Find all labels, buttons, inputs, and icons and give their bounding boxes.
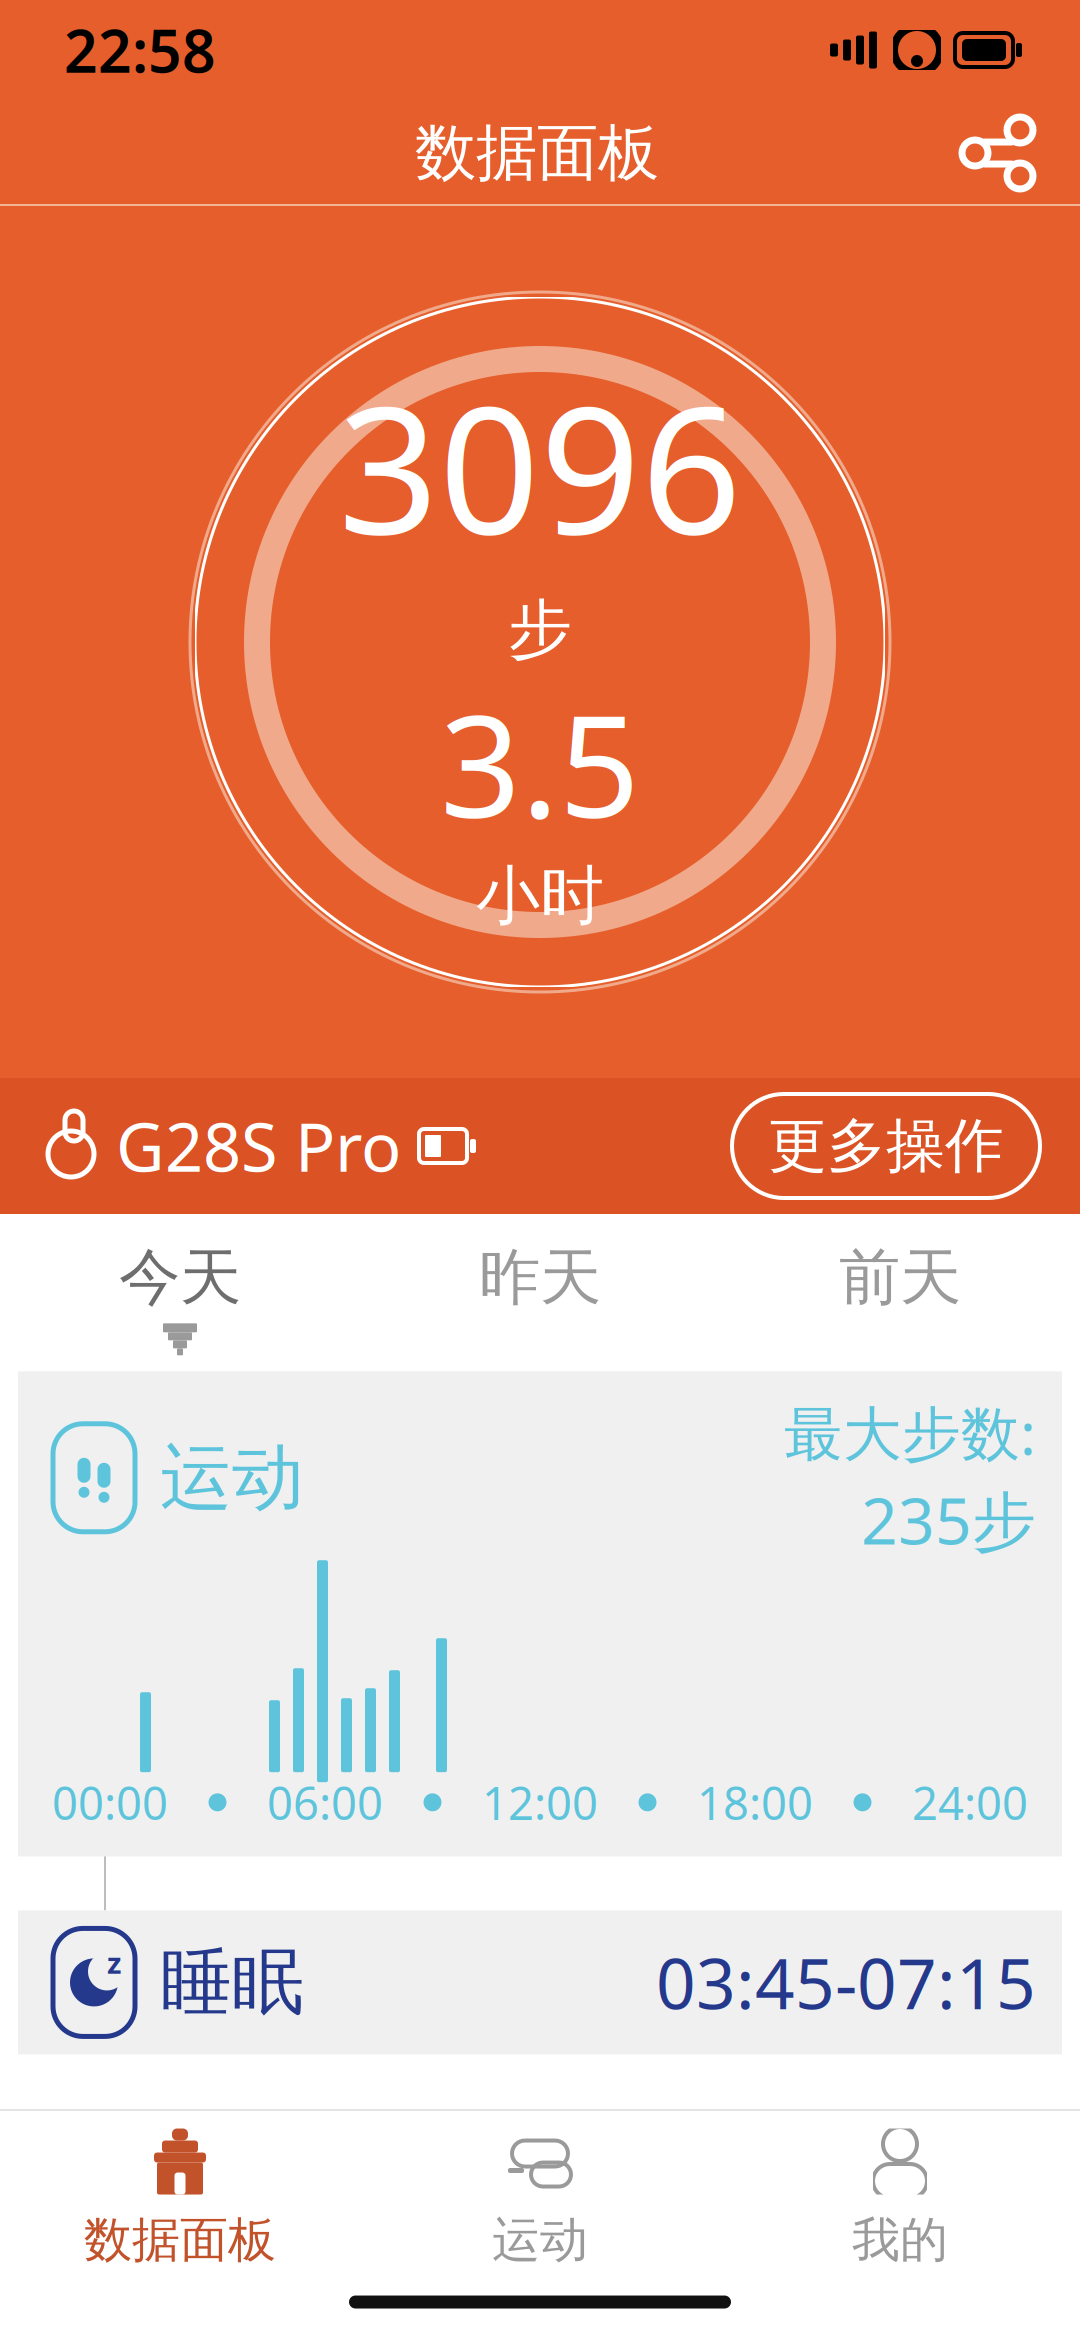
staticText: G28S Pro bbox=[116, 1102, 401, 1190]
staticText: 12:00 bbox=[482, 1772, 598, 1832]
staticText: 我的 bbox=[852, 2210, 948, 2269]
staticText: 18:00 bbox=[697, 1772, 813, 1832]
staticText: 数据面板 bbox=[84, 2210, 276, 2269]
button[interactable]: 我的 bbox=[720, 2128, 1080, 2269]
button[interactable]: z bbox=[18, 1910, 1062, 2054]
button[interactable]: 分享 bbox=[950, 105, 1046, 201]
staticText: 睡眠 bbox=[160, 1938, 304, 2027]
staticText: 最大步数: bbox=[784, 1393, 1036, 1471]
staticText: 数据面板 bbox=[415, 115, 659, 191]
staticText: 昨天 bbox=[479, 1240, 601, 1315]
button[interactable]: 运动 bbox=[360, 2128, 720, 2269]
staticText: 小时 bbox=[476, 857, 604, 935]
staticText: 22:58 bbox=[64, 11, 216, 89]
staticText: 235步 bbox=[861, 1477, 1036, 1562]
button[interactable]: 更多操作 bbox=[732, 1094, 1040, 1198]
button[interactable]: 前天 bbox=[720, 1214, 1080, 1371]
staticText: 前天 bbox=[839, 1240, 961, 1315]
staticText: z bbox=[107, 1943, 121, 1982]
staticText: 今天 bbox=[119, 1240, 241, 1315]
button[interactable]: 数据面板 bbox=[0, 2128, 360, 2269]
button[interactable]: 昨天 bbox=[360, 1214, 720, 1371]
staticText: 步 bbox=[508, 590, 572, 669]
staticText: 24:00 bbox=[912, 1772, 1028, 1832]
staticText: 3.5 bbox=[440, 669, 640, 857]
staticText: 运动 bbox=[160, 1434, 304, 1522]
staticText: 更多操作 bbox=[768, 1110, 1004, 1182]
button[interactable]: 运动 bbox=[18, 1371, 1062, 1856]
button[interactable]: 今天 bbox=[0, 1214, 360, 1371]
staticText: 3096 bbox=[338, 349, 742, 582]
staticText: 00:00 bbox=[52, 1772, 168, 1832]
staticText: 运动 bbox=[492, 2210, 588, 2269]
staticText: 06:00 bbox=[267, 1772, 383, 1832]
staticText: 03:45-07:15 bbox=[656, 1936, 1036, 2028]
